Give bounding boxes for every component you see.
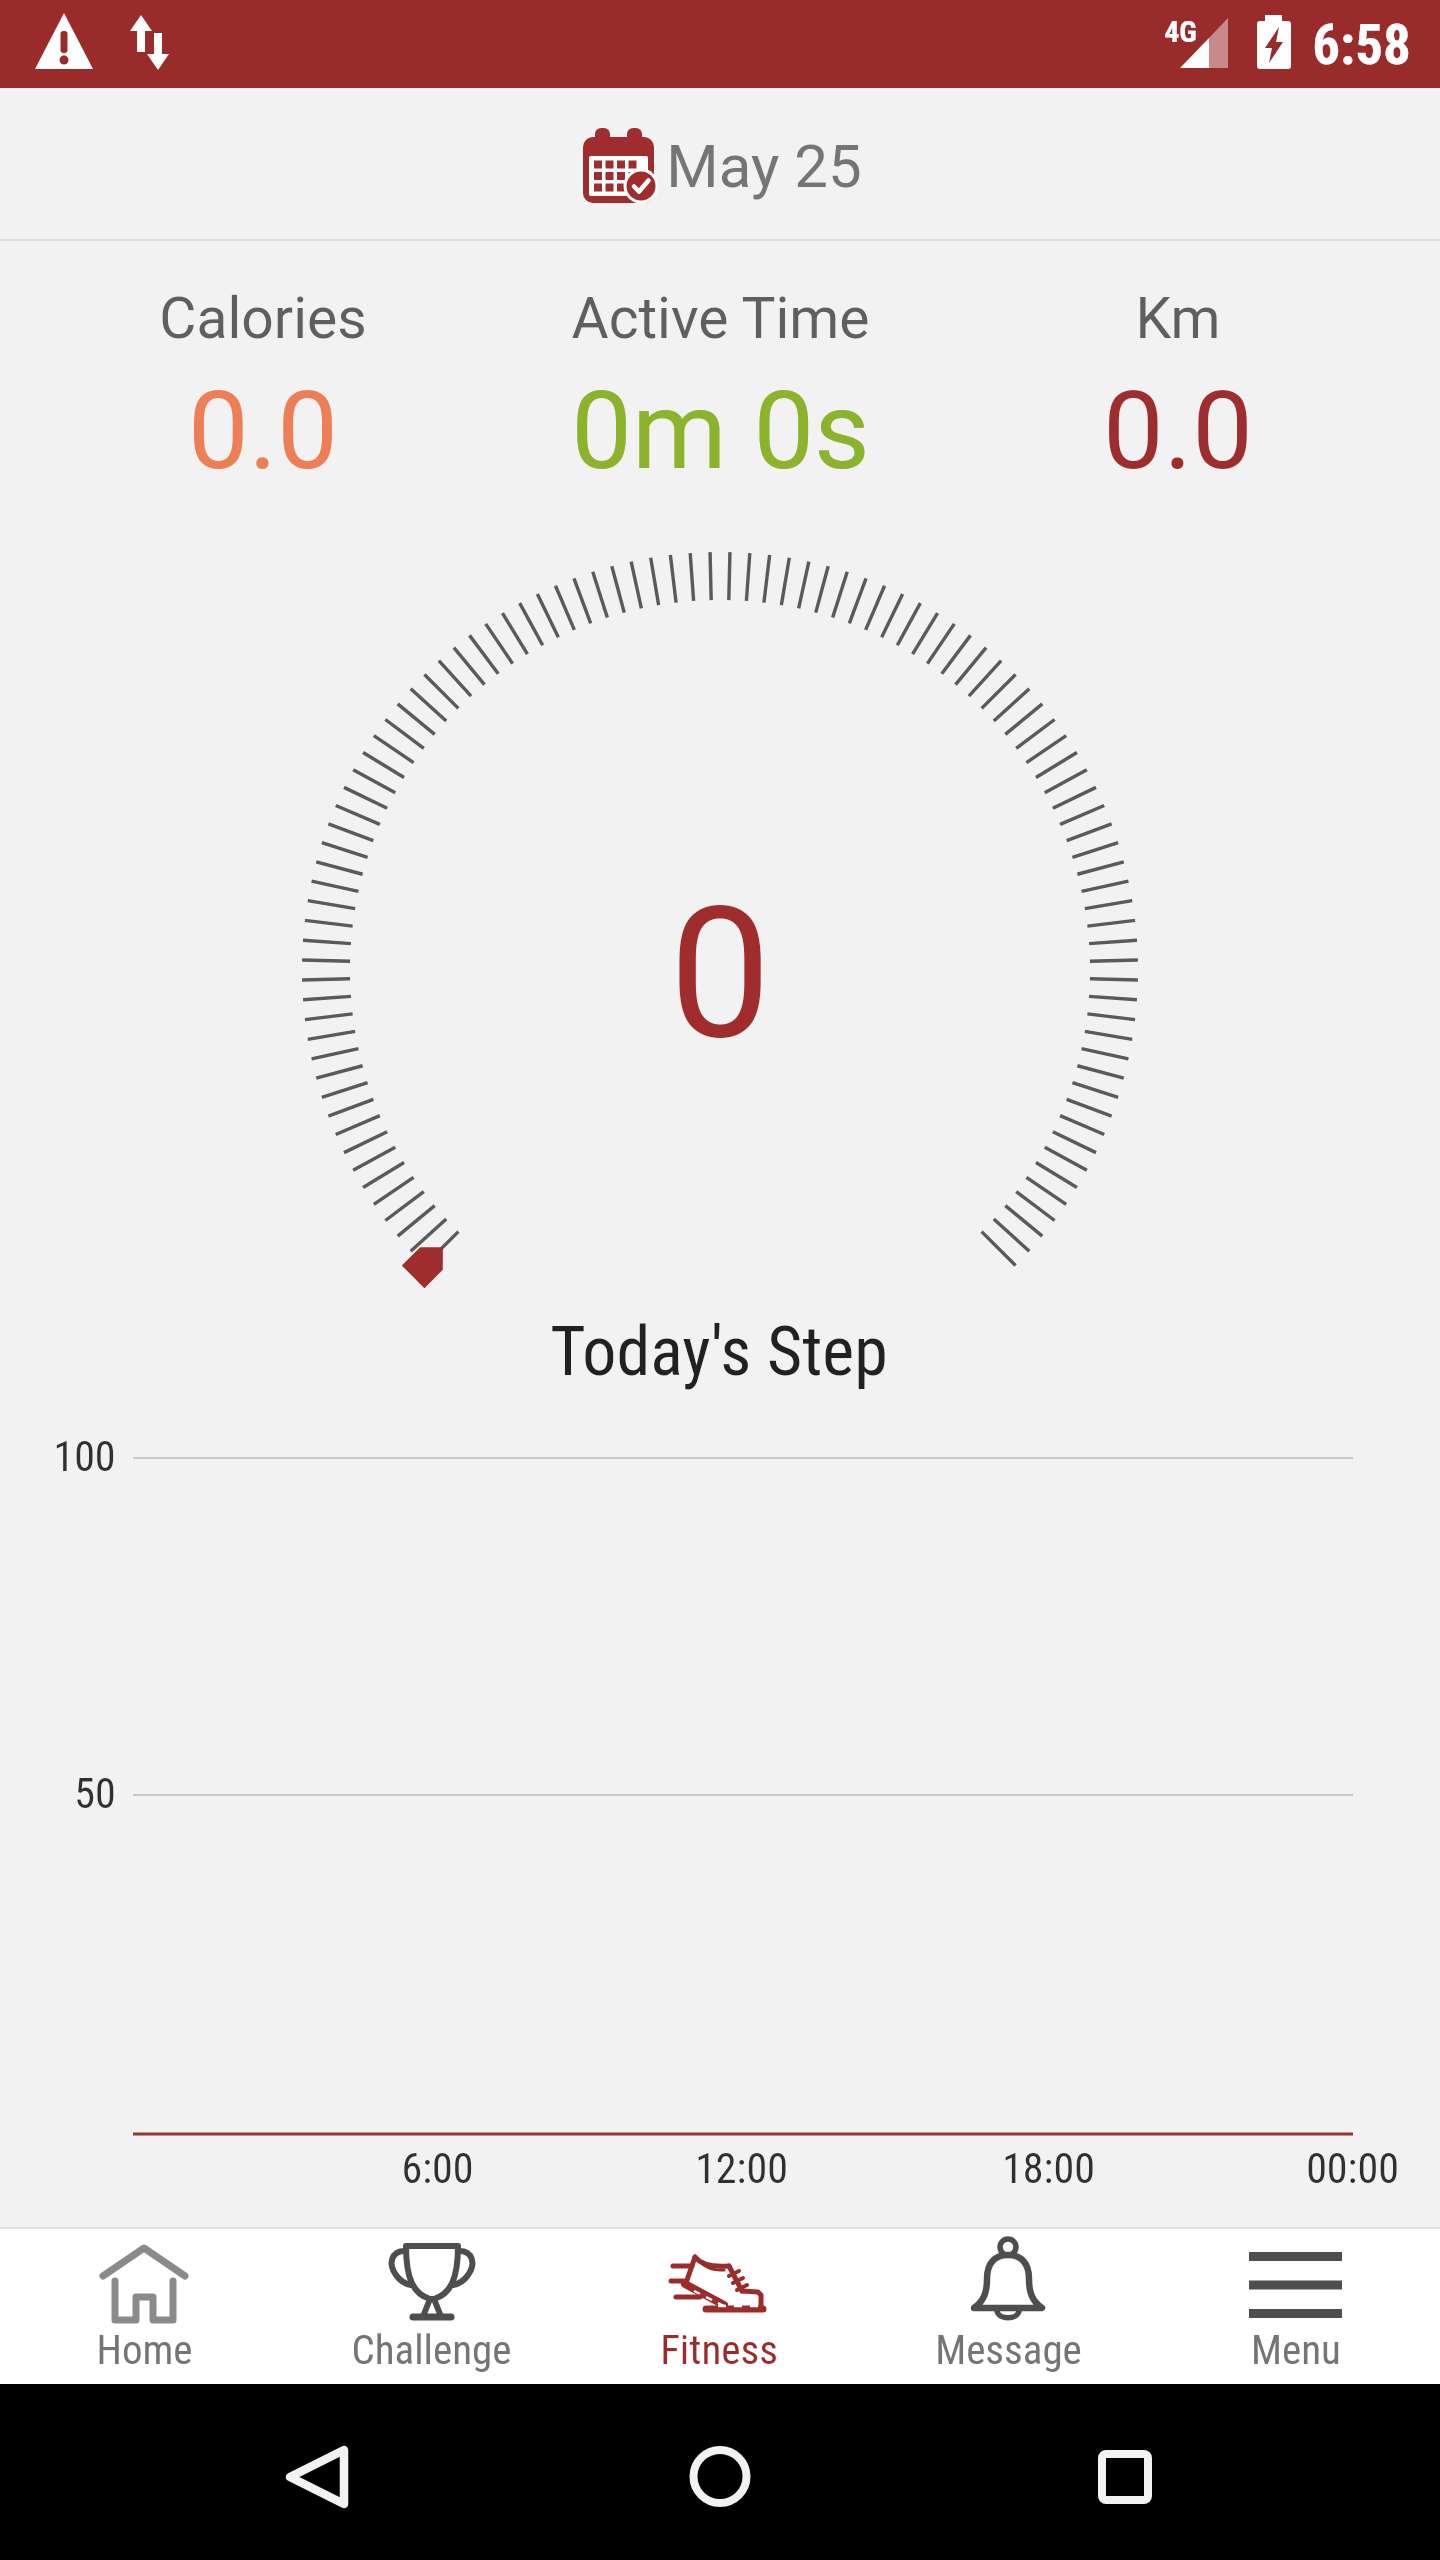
button[interactable]	[240, 2400, 400, 2560]
staticText: May 25	[666, 131, 862, 201]
staticText: Km	[1135, 285, 1221, 352]
staticText: 6:00	[401, 2144, 474, 2193]
staticText: 50	[74, 1769, 116, 1818]
button[interactable]	[576, 2228, 864, 2384]
button[interactable]	[864, 2228, 1152, 2384]
button[interactable]	[1045, 2400, 1205, 2560]
staticText: Active Time	[571, 285, 870, 352]
button[interactable]	[288, 2228, 576, 2384]
staticText: 0.0	[188, 368, 338, 495]
staticText: 0	[669, 868, 771, 1068]
staticText: 4G	[1164, 14, 1197, 49]
button[interactable]	[640, 2400, 800, 2560]
staticText: 0.0	[1103, 368, 1253, 495]
staticText: Message	[935, 2326, 1082, 2374]
staticText: Home	[96, 2326, 193, 2374]
staticText: 18:00	[1002, 2144, 1095, 2193]
staticText: 00:00	[1306, 2144, 1399, 2193]
staticText: Fitness	[660, 2326, 778, 2374]
staticText: Menu	[1251, 2326, 1341, 2374]
staticText: 0m 0s	[571, 368, 870, 495]
staticText: 6:58	[1312, 13, 1411, 77]
button[interactable]	[560, 110, 880, 230]
staticText: 100	[53, 1432, 116, 1481]
staticText: Challenge	[351, 2326, 512, 2374]
button[interactable]	[0, 2228, 288, 2384]
staticText: Today's Step	[550, 1312, 888, 1392]
staticText: 12:00	[695, 2144, 788, 2193]
button[interactable]	[1152, 2228, 1440, 2384]
staticText: Calories	[159, 285, 367, 352]
